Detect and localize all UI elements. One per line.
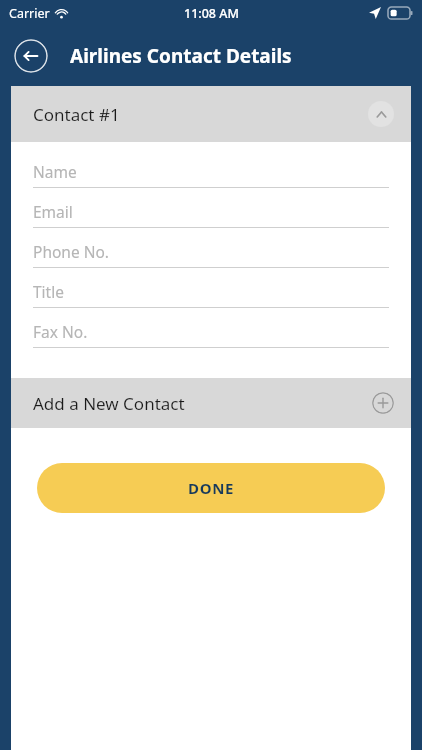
staticText: Name [33,161,77,182]
staticText: DONE [188,478,234,498]
button[interactable]: Phone No. [33,236,389,276]
staticText: Add a New Contact [33,392,185,415]
button[interactable]: Name [33,156,389,196]
staticText: Title [33,281,64,302]
staticText: Phone No. [33,241,109,262]
button[interactable]: Add a new contact [372,392,394,414]
staticText: Fax No. [33,321,88,342]
button[interactable]: Contact #1 [11,86,411,142]
staticText: Contact #1 [33,103,120,126]
button[interactable]: Fax No. [33,316,389,356]
button[interactable]: Back [14,39,48,73]
staticText: Email [33,201,73,222]
button[interactable]: Title [33,276,389,316]
staticText: Carrier [9,5,50,22]
staticText: 11:08 AM [184,5,239,22]
button[interactable]: Collapse contact [368,101,394,127]
button[interactable]: DONE [37,463,385,513]
button[interactable]: Add a New Contact [11,378,411,428]
button[interactable]: Email [33,196,389,236]
staticText: Airlines Contact Details [70,43,292,69]
